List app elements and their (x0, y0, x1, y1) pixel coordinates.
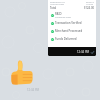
staticText: Total (50, 6, 57, 10)
staticText: 124.00 (86, 3, 94, 6)
staticText: Amount paid (50, 3, 64, 6)
other: Read (91, 51, 94, 54)
staticText: Merchant Processed (55, 29, 83, 33)
staticText: 884213 (86, 1, 94, 4)
button[interactable]: Funds Delivered (51, 35, 77, 43)
button[interactable]: PAID (51, 11, 72, 19)
staticText: 12:34 PM (27, 88, 40, 92)
staticText: Reference No. (50, 1, 66, 4)
button[interactable]: Transaction Verified (51, 19, 82, 27)
staticText: Funds Delivered (55, 37, 77, 41)
button[interactable]: Merchant Processed (51, 27, 83, 35)
staticText: Transaction Verified (55, 21, 82, 25)
button[interactable]: Reference No. (48, 0, 96, 56)
staticText: PAID (55, 12, 62, 16)
staticText: Completed today (55, 16, 72, 19)
button[interactable]: Thumbs up sticker (11, 60, 33, 85)
staticText: $124.00 (84, 6, 94, 10)
staticText: 12:34 PM (77, 50, 90, 54)
